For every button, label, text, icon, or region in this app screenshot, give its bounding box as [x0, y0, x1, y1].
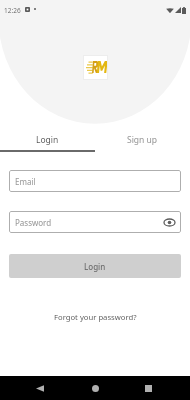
staticText: Forgot your password?: [54, 312, 137, 322]
button[interactable]: Back: [27, 376, 52, 400]
button[interactable]: Sign up: [95, 130, 190, 150]
button[interactable]: Home: [82, 376, 108, 400]
button[interactable]: Recent apps: [136, 376, 161, 400]
staticText: Email: [15, 176, 36, 187]
button[interactable]: Login: [0, 130, 95, 150]
staticText: Sign up: [127, 134, 158, 146]
button[interactable]: Password: [9, 211, 181, 233]
button[interactable]: Login: [9, 254, 181, 278]
button[interactable]: Show password: [164, 219, 175, 226]
staticText: Login: [36, 134, 59, 146]
button[interactable]: Email: [9, 170, 181, 192]
staticText: Password: [15, 217, 52, 228]
button[interactable]: Forgot your password?: [50, 310, 141, 324]
staticText: 12:26: [4, 6, 21, 15]
staticText: Login: [84, 261, 106, 272]
